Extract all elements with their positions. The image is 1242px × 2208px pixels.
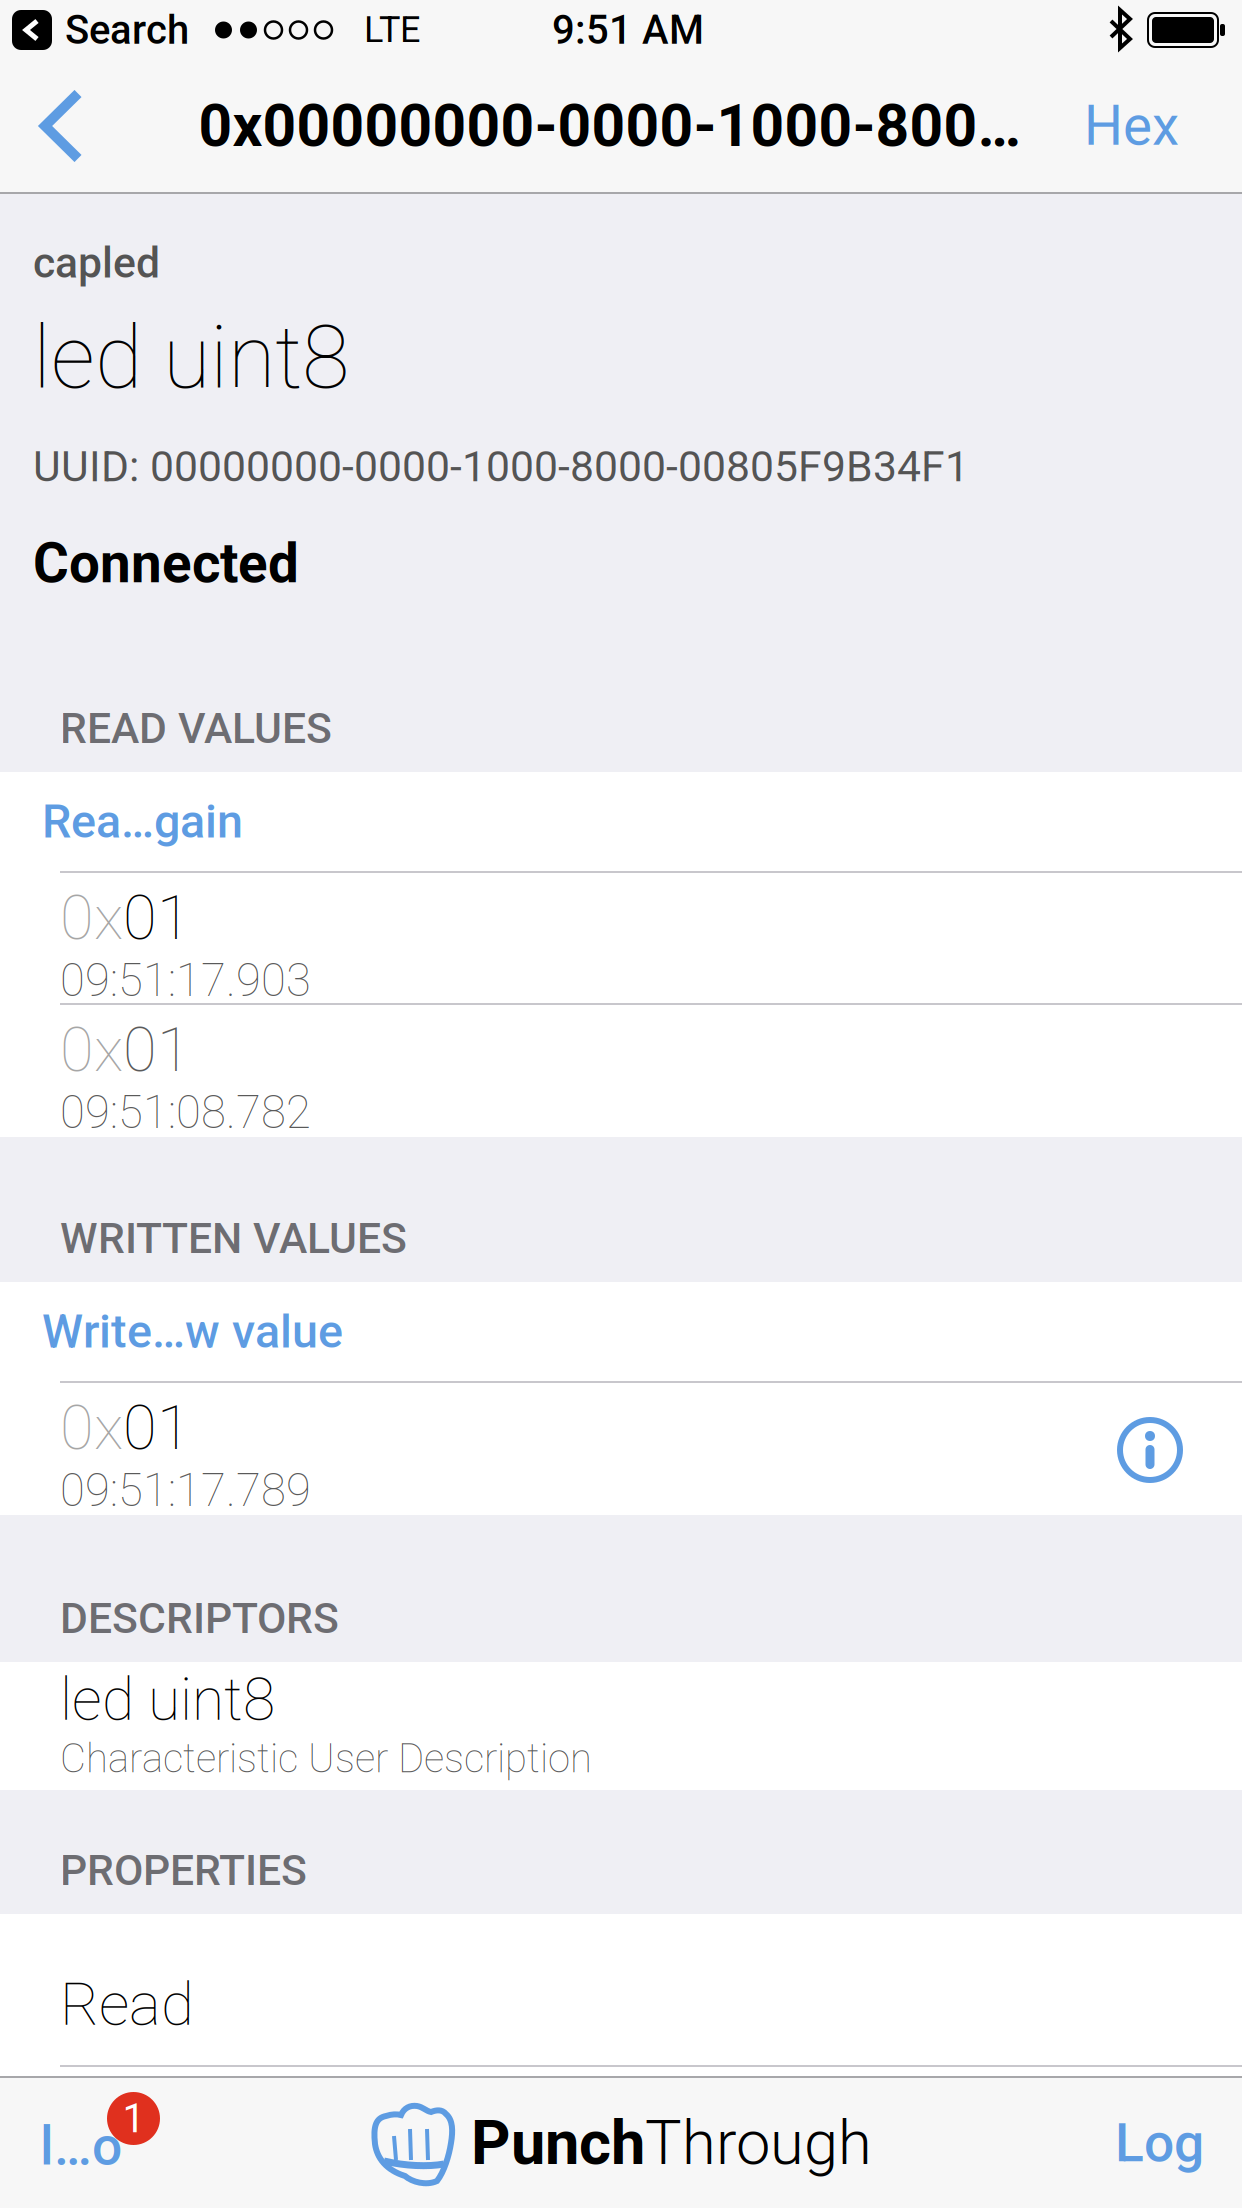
staticText: 9:51 AM — [552, 7, 704, 53]
staticText: Log — [1115, 2112, 1204, 2174]
staticText: PROPERTIES — [60, 1845, 307, 1895]
button[interactable]: Log — [1115, 2078, 1242, 2208]
staticText: 01 — [123, 882, 191, 954]
staticText: 09:51:17.789 — [60, 1464, 311, 1517]
button[interactable]: Write…w value — [0, 1282, 1242, 1383]
staticText: 09:51:17.903 — [60, 954, 311, 1007]
staticText: DESCRIPTORS — [60, 1593, 339, 1643]
staticText: 0x — [60, 1014, 123, 1086]
staticText: led uint8 — [60, 1665, 275, 1734]
staticText: Hex — [1084, 94, 1179, 158]
button[interactable]: Rea…gain — [0, 772, 1242, 873]
staticText: 0x00000000-0000-1000-800… — [198, 92, 1020, 160]
staticText: l…o — [40, 2115, 122, 2177]
staticText: 01 — [123, 1392, 191, 1464]
staticText: Connected — [33, 532, 299, 596]
staticText: 0x — [60, 1392, 123, 1464]
staticText: capled — [33, 238, 160, 288]
staticText: Write…w value — [42, 1304, 343, 1359]
staticText: Punch — [471, 2107, 645, 2179]
staticText: 1 — [122, 2095, 144, 2142]
button[interactable]: led uint8 — [0, 1662, 1242, 1790]
staticText: Search — [65, 7, 189, 53]
staticText: 01 — [123, 1014, 191, 1086]
staticText: Through — [645, 2107, 872, 2179]
button[interactable]: Back — [0, 60, 103, 192]
staticText: Rea…gain — [42, 794, 243, 849]
button[interactable]: Info — [1102, 1402, 1198, 1498]
button[interactable]: Hex — [1072, 60, 1242, 192]
button[interactable]: l…o — [0, 2078, 160, 2208]
staticText: LTE — [364, 9, 420, 51]
staticText: Read — [60, 1969, 194, 2039]
staticText: 0x — [60, 882, 123, 954]
staticText: READ VALUES — [60, 703, 332, 753]
staticText: Characteristic User Description — [60, 1735, 592, 1782]
staticText: led uint8 — [33, 307, 349, 409]
staticText: WRITTEN VALUES — [60, 1213, 407, 1263]
staticText: 09:51:08.782 — [60, 1086, 311, 1139]
staticText: UUID: 00000000-0000-1000-8000-00805F9B34… — [33, 442, 969, 492]
